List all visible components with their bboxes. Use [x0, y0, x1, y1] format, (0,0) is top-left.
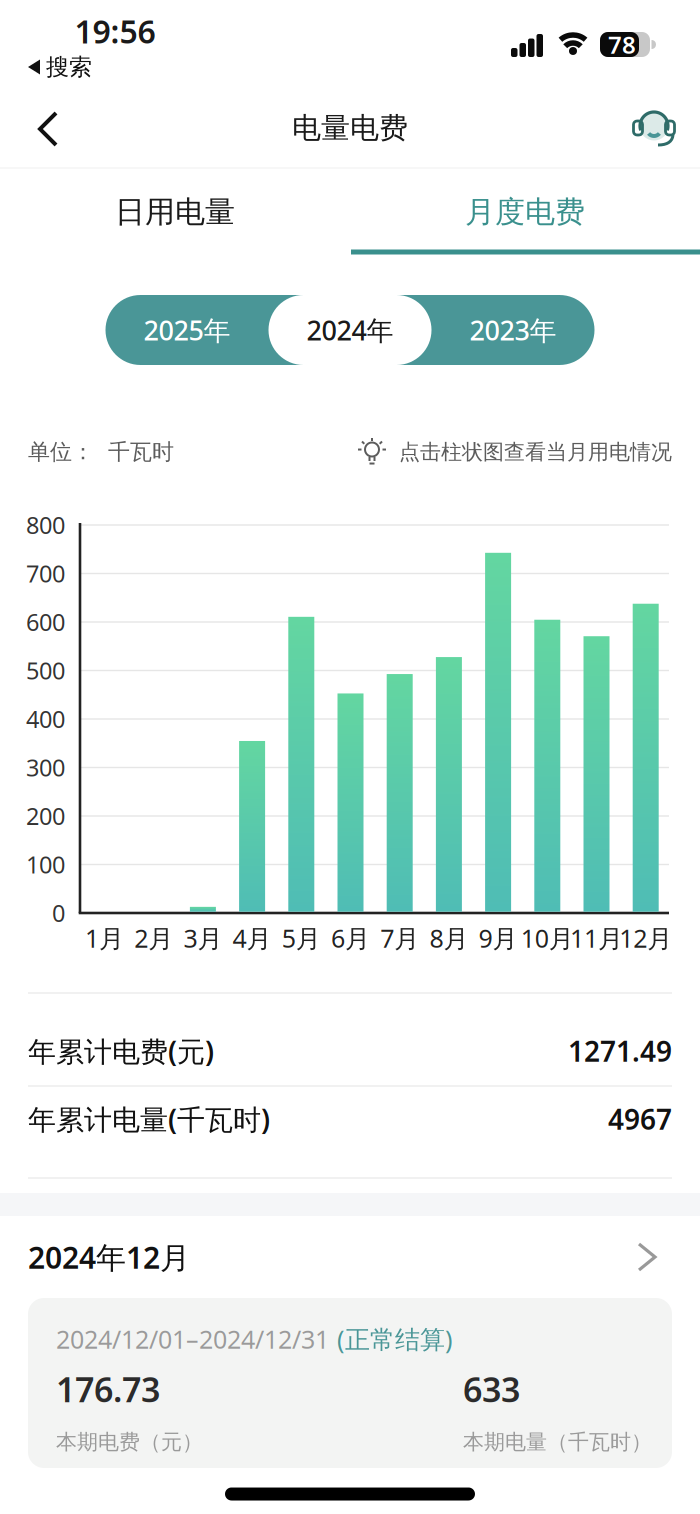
staticText: 日用电量	[115, 194, 235, 230]
button[interactable]: 2023年	[431, 295, 594, 365]
button[interactable]: 12月 635千瓦时	[633, 604, 659, 912]
button[interactable]: 6月 450千瓦时	[337, 693, 363, 912]
staticText: 2024/12/01–2024/12/31	[56, 1322, 329, 1356]
staticText: 1月	[85, 921, 124, 955]
button[interactable]: 月度电费	[350, 170, 700, 254]
staticText: 2024年	[306, 312, 393, 348]
staticText: 年累计电量(千瓦时)	[28, 1100, 270, 1138]
staticText: 176.73	[56, 1366, 160, 1412]
staticText: 19:56	[74, 10, 155, 52]
button[interactable]: 5月 608千瓦时	[288, 617, 314, 912]
staticText: 2023年	[469, 312, 556, 348]
staticText: 6月	[331, 921, 370, 955]
staticText: 月度电费	[465, 194, 585, 230]
button[interactable]: 2024年12月	[0, 1226, 700, 1288]
staticText: 单位： 千瓦时	[28, 438, 174, 465]
staticText: 12月	[619, 921, 672, 955]
button[interactable]: 返回	[24, 107, 80, 151]
staticText: 本期电费（元）	[56, 1429, 203, 1455]
button[interactable]: 日用电量	[0, 170, 350, 254]
staticText: 1271.49	[568, 1032, 672, 1070]
button[interactable]: 7月 490千瓦时	[387, 674, 413, 912]
staticText: 0	[52, 897, 65, 929]
button[interactable]: 客服	[630, 104, 678, 152]
button[interactable]: 2024年	[268, 295, 431, 365]
staticText: 本期电量（千瓦时）	[463, 1429, 652, 1455]
staticText: 点击柱状图查看当月用电情况	[399, 439, 672, 465]
staticText: 8月	[429, 921, 468, 955]
button[interactable]: 10月 602千瓦时	[534, 620, 560, 912]
staticText: 3月	[183, 921, 222, 955]
staticText: 4月	[233, 921, 272, 955]
staticText: 4967	[608, 1100, 672, 1138]
staticText: 年累计电费(元)	[28, 1032, 214, 1070]
staticText: 700	[26, 558, 65, 589]
staticText: 9月	[479, 921, 518, 955]
staticText: 600	[26, 606, 65, 638]
staticText: 78	[608, 29, 636, 60]
staticText: 7月	[380, 921, 419, 955]
button[interactable]: 8月 525千瓦时	[436, 657, 462, 912]
staticText: 2月	[134, 921, 173, 955]
staticText: 300	[26, 752, 65, 783]
button[interactable]: 3月 10千瓦时	[190, 907, 216, 912]
button[interactable]: 2025年	[105, 295, 268, 365]
staticText: 400	[26, 703, 65, 735]
staticText: 10月	[521, 921, 574, 955]
staticText: (正常结算)	[337, 1322, 453, 1356]
staticText: 100	[26, 849, 65, 880]
staticText: 2024年12月	[28, 1237, 190, 1277]
staticText: 800	[26, 509, 65, 541]
staticText: 搜索	[46, 53, 92, 81]
staticText: 11月	[570, 921, 623, 955]
staticText: 5月	[282, 921, 321, 955]
button[interactable]: 2024年12月账单详情	[28, 1298, 672, 1468]
staticText: 200	[26, 800, 65, 832]
button[interactable]: 9月 740千瓦时	[485, 553, 511, 912]
staticText: 2025年	[143, 312, 230, 348]
staticText: 500	[26, 655, 65, 686]
staticText: 633	[463, 1366, 520, 1412]
staticText: 电量电费	[292, 110, 408, 146]
button[interactable]: 返回搜索	[20, 52, 100, 82]
button[interactable]: 4月 352千瓦时	[239, 741, 265, 912]
button[interactable]: 11月 568千瓦时	[583, 636, 609, 912]
